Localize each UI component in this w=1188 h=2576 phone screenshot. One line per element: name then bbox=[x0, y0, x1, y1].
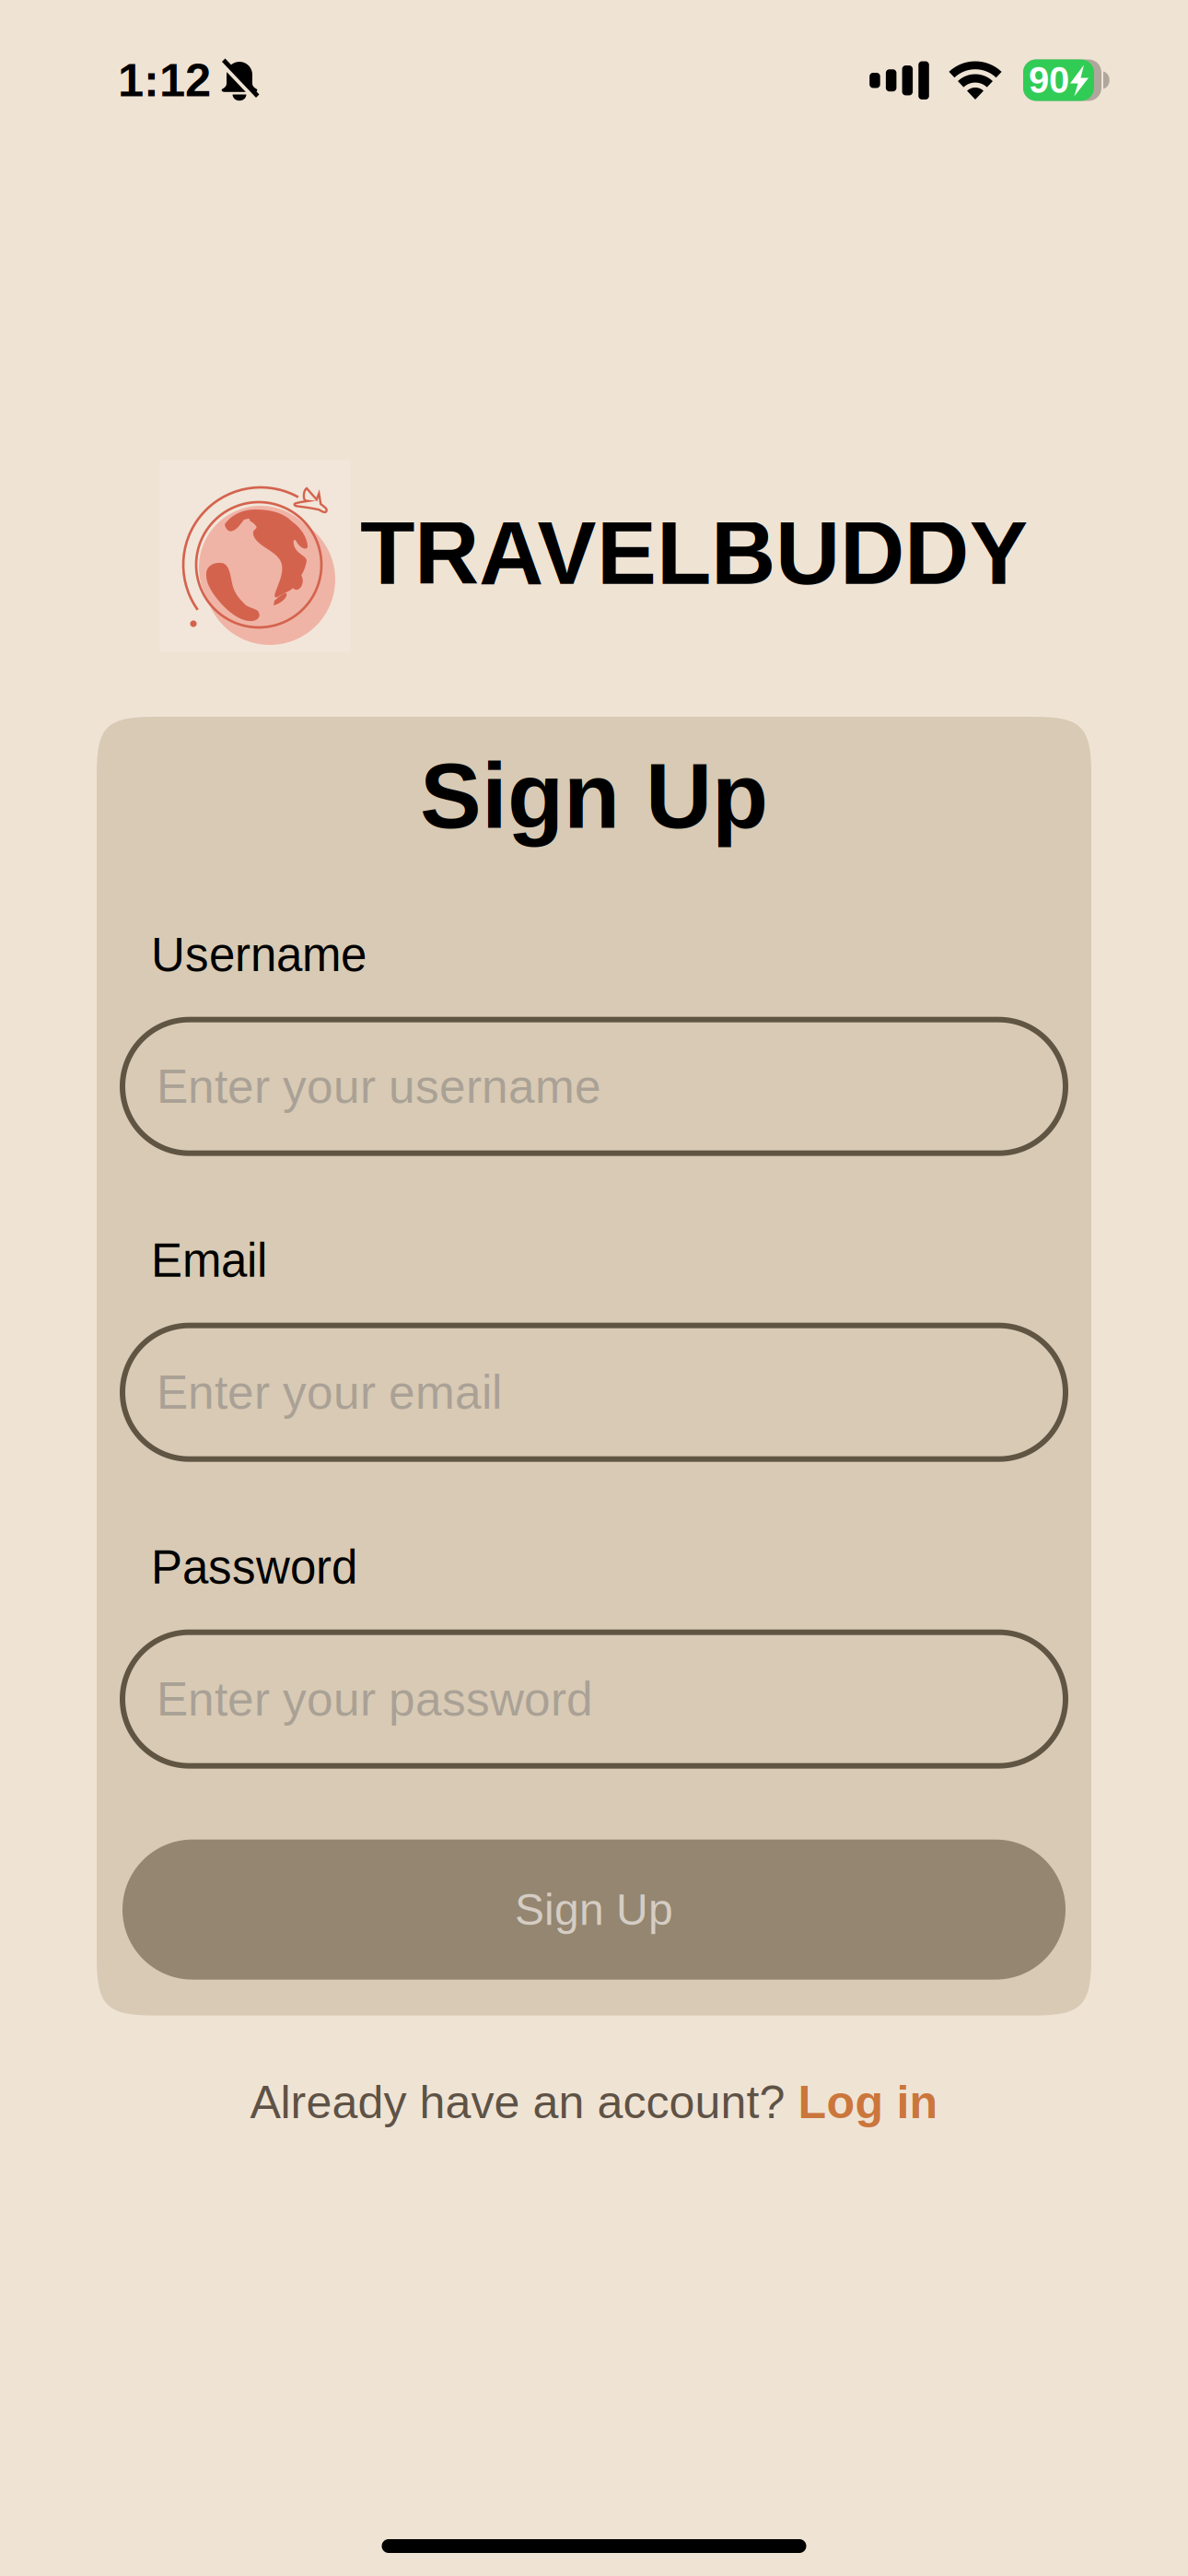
staticText: Already have an account? bbox=[250, 2076, 798, 2128]
staticText: Enter your password bbox=[157, 1673, 593, 1725]
button[interactable]: Already have an account? bbox=[213, 2054, 975, 2150]
staticText: 90 bbox=[1029, 60, 1069, 101]
staticText: Log in bbox=[798, 2076, 938, 2128]
staticText: Password bbox=[151, 1541, 357, 1594]
staticText: Username bbox=[151, 928, 367, 981]
staticText: Sign Up bbox=[515, 1885, 673, 1934]
staticText: TRAVELBUDDY bbox=[360, 503, 1029, 603]
staticText: Sign Up bbox=[420, 744, 768, 847]
staticText: Email bbox=[151, 1234, 267, 1287]
button[interactable]: Sign Up bbox=[122, 1839, 1066, 1980]
staticText: 1:12 bbox=[118, 54, 211, 106]
staticText: Enter your email bbox=[157, 1366, 502, 1419]
staticText: Enter your username bbox=[157, 1060, 601, 1113]
